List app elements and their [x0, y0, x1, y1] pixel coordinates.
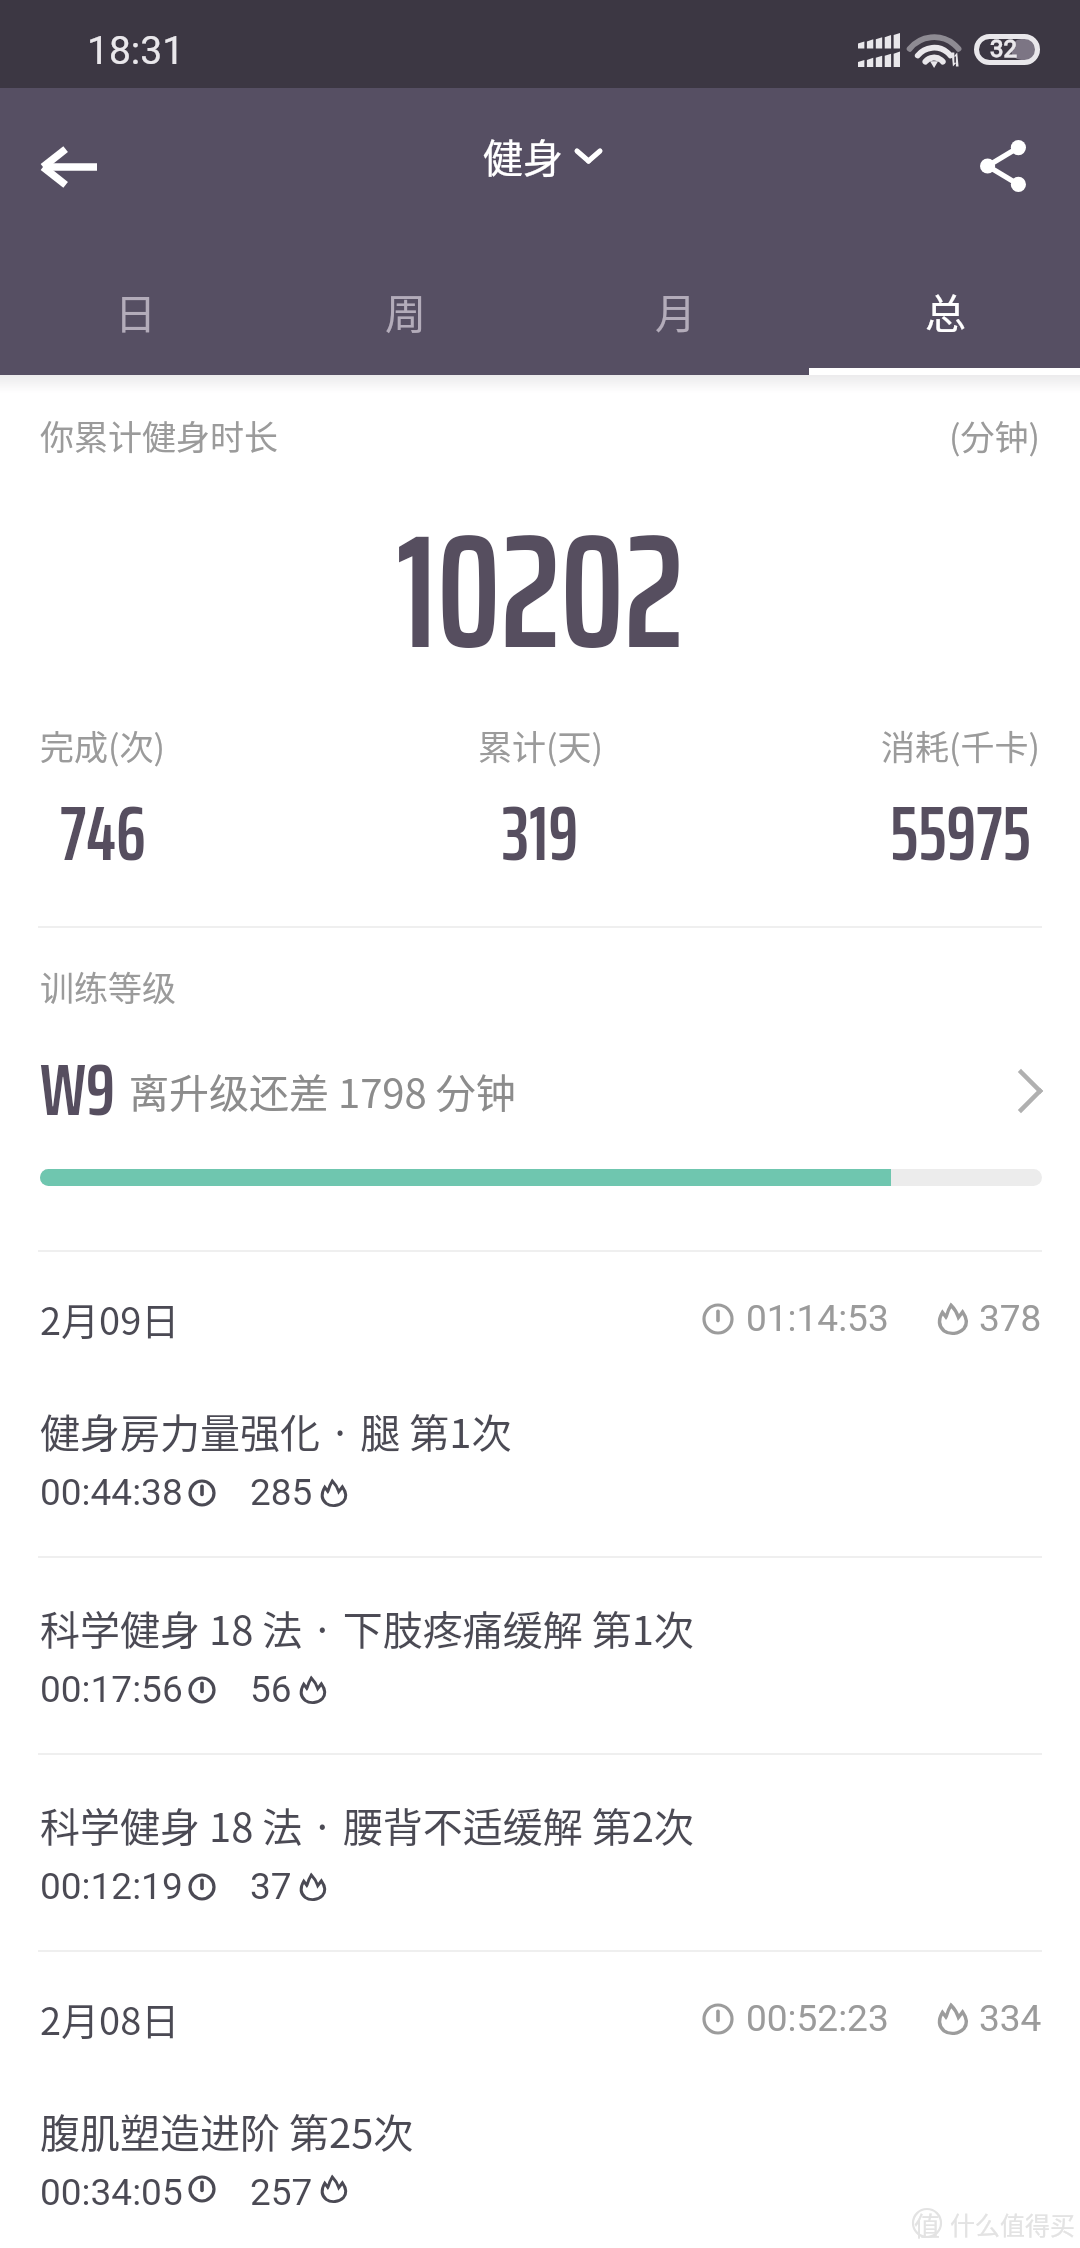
- staticText: 健身: [483, 127, 563, 185]
- staticText: (分钟): [949, 411, 1040, 460]
- staticText: 2月09日: [40, 1291, 180, 1346]
- staticText: 285: [250, 1471, 313, 1514]
- button[interactable]: Back: [14, 112, 124, 222]
- staticText: 值: [914, 2206, 941, 2240]
- staticText: 训练等级: [40, 962, 176, 1011]
- staticText: 18:31: [87, 28, 185, 74]
- staticText: 319: [502, 774, 579, 894]
- staticText: 10202: [396, 465, 684, 675]
- staticText: 00:52:23: [746, 1997, 889, 2040]
- staticText: 32: [990, 35, 1017, 63]
- staticText: 01:14:53: [746, 1297, 889, 1340]
- staticText: 37: [250, 1865, 292, 1908]
- staticText: 腹肌塑造进阶 第25次: [40, 2102, 414, 2160]
- staticText: 完成(次): [40, 721, 165, 770]
- staticText: 日: [115, 281, 156, 340]
- button[interactable]: 周: [270, 242, 540, 378]
- button[interactable]: W9: [0, 1034, 1080, 1150]
- staticText: 总: [925, 281, 966, 340]
- staticText: 00:12:19: [40, 1865, 183, 1908]
- staticText: 00:34:05: [40, 2171, 183, 2206]
- button[interactable]: 月: [540, 242, 810, 378]
- button[interactable]: 腹肌塑造进阶 第25次: [0, 2061, 1080, 2248]
- button[interactable]: Share: [948, 111, 1058, 221]
- staticText: 55975: [890, 774, 1031, 894]
- staticText: 257: [250, 2171, 313, 2206]
- button[interactable]: 总: [810, 242, 1080, 378]
- staticText: 周: [385, 281, 426, 340]
- button[interactable]: 科学健身 18 法 · 腰背不适缓解 第2次: [0, 1755, 1080, 1950]
- staticText: 什么值得买: [950, 2206, 1076, 2242]
- staticText: 你累计健身时长: [40, 411, 278, 460]
- staticText: 334: [979, 1997, 1042, 2040]
- staticText: 累计(天): [478, 721, 603, 770]
- staticText: 健身房力量强化 · 腿 第1次: [40, 1402, 512, 1460]
- button[interactable]: 日: [0, 242, 270, 378]
- staticText: W9: [40, 1031, 115, 1147]
- staticText: 00:17:56: [40, 1668, 183, 1711]
- staticText: 科学健身 18 法 · 腰背不适缓解 第2次: [40, 1796, 694, 1854]
- staticText: 2月08日: [40, 1991, 180, 2046]
- staticText: 消耗(千卡): [881, 721, 1040, 770]
- staticText: 378: [979, 1297, 1042, 1340]
- staticText: 科学健身 18 法 · 下肢疼痛缓解 第1次: [40, 1599, 694, 1657]
- staticText: 月: [655, 281, 696, 340]
- staticText: 00:44:38: [40, 1471, 183, 1514]
- staticText: 56: [250, 1668, 292, 1711]
- staticText: 746: [60, 774, 146, 894]
- button[interactable]: 健身: [463, 113, 622, 199]
- button[interactable]: 健身房力量强化 · 腿 第1次: [0, 1361, 1080, 1556]
- staticText: 离升级还差 1798 分钟: [129, 1062, 516, 1120]
- button[interactable]: 科学健身 18 法 · 下肢疼痛缓解 第1次: [0, 1558, 1080, 1753]
